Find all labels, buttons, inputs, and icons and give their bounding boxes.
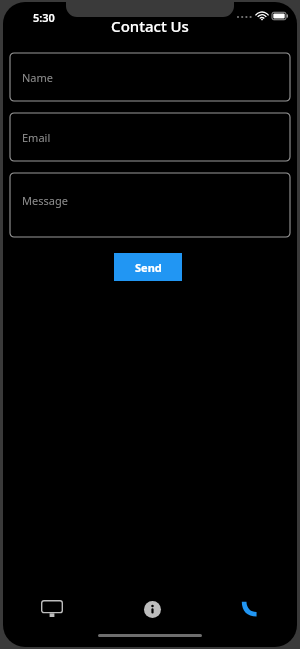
button[interactable]: Email <box>10 113 290 161</box>
staticText: Email <box>22 130 51 145</box>
button[interactable]: Display <box>3 591 103 627</box>
staticText: Contact Us <box>3 16 297 36</box>
button[interactable]: Name <box>10 53 290 101</box>
staticText: Message <box>22 193 68 208</box>
button[interactable]: Info <box>104 591 200 627</box>
button[interactable]: Send <box>114 253 182 281</box>
staticText: Send <box>135 260 162 275</box>
button[interactable]: Call <box>201 591 297 627</box>
button[interactable]: Message <box>10 173 290 237</box>
staticText: Name <box>22 70 54 85</box>
staticText: 5:30 <box>33 10 55 25</box>
